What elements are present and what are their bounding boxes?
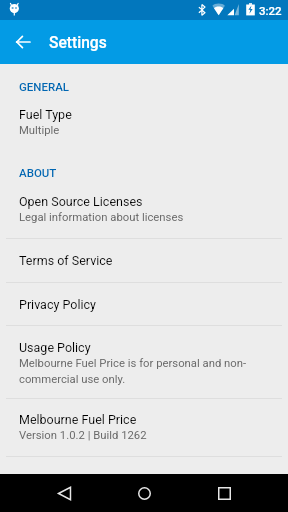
staticText: Privacy Policy (19, 297, 96, 312)
staticText: Terms of Service (19, 253, 113, 268)
staticText: GENERAL (19, 80, 70, 93)
staticText: Legal information about licenses (19, 211, 184, 224)
staticText: ABOUT (19, 166, 57, 179)
staticText: Settings (49, 34, 107, 52)
button[interactable]: Recent apps (200, 474, 248, 512)
button[interactable]: Fuel Type (0, 107, 288, 137)
staticText: Open Source Licenses (19, 194, 143, 209)
staticText: Melbourne Fuel Price is for personal and… (19, 357, 268, 386)
button[interactable]: Navigate up (9, 28, 37, 56)
button[interactable]: Privacy Policy (0, 297, 288, 312)
button[interactable]: Terms of Service (0, 253, 288, 268)
staticText: Version 1.0.2 | Build 1262 (19, 429, 147, 442)
staticText: 3:22 (259, 4, 282, 17)
button[interactable]: Back (40, 474, 88, 512)
staticText: Fuel Type (19, 107, 72, 122)
button[interactable]: Home (120, 474, 168, 512)
staticText: Multiple (19, 124, 60, 137)
staticText: Usage Policy (19, 340, 91, 355)
button[interactable]: Usage Policy (0, 340, 288, 386)
button[interactable]: Melbourne Fuel Price (0, 412, 288, 442)
staticText: Melbourne Fuel Price (19, 412, 137, 427)
button[interactable]: Open Source Licenses (0, 194, 288, 224)
